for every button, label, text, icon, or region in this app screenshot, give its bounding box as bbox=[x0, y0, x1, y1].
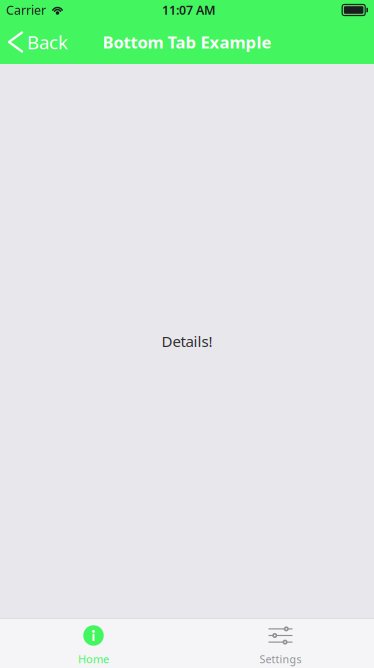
staticText: Carrier bbox=[6, 2, 46, 18]
staticText: Details! bbox=[161, 331, 212, 351]
staticText: Settings bbox=[259, 652, 301, 666]
staticText: Home bbox=[78, 651, 109, 667]
button[interactable]: Home bbox=[0, 619, 187, 668]
button[interactable]: Back bbox=[0, 20, 78, 64]
staticText: Back bbox=[27, 29, 68, 55]
staticText: Bottom Tab Example bbox=[102, 31, 271, 53]
staticText: 11:07 AM bbox=[162, 2, 216, 18]
button[interactable]: Settings bbox=[187, 619, 374, 668]
